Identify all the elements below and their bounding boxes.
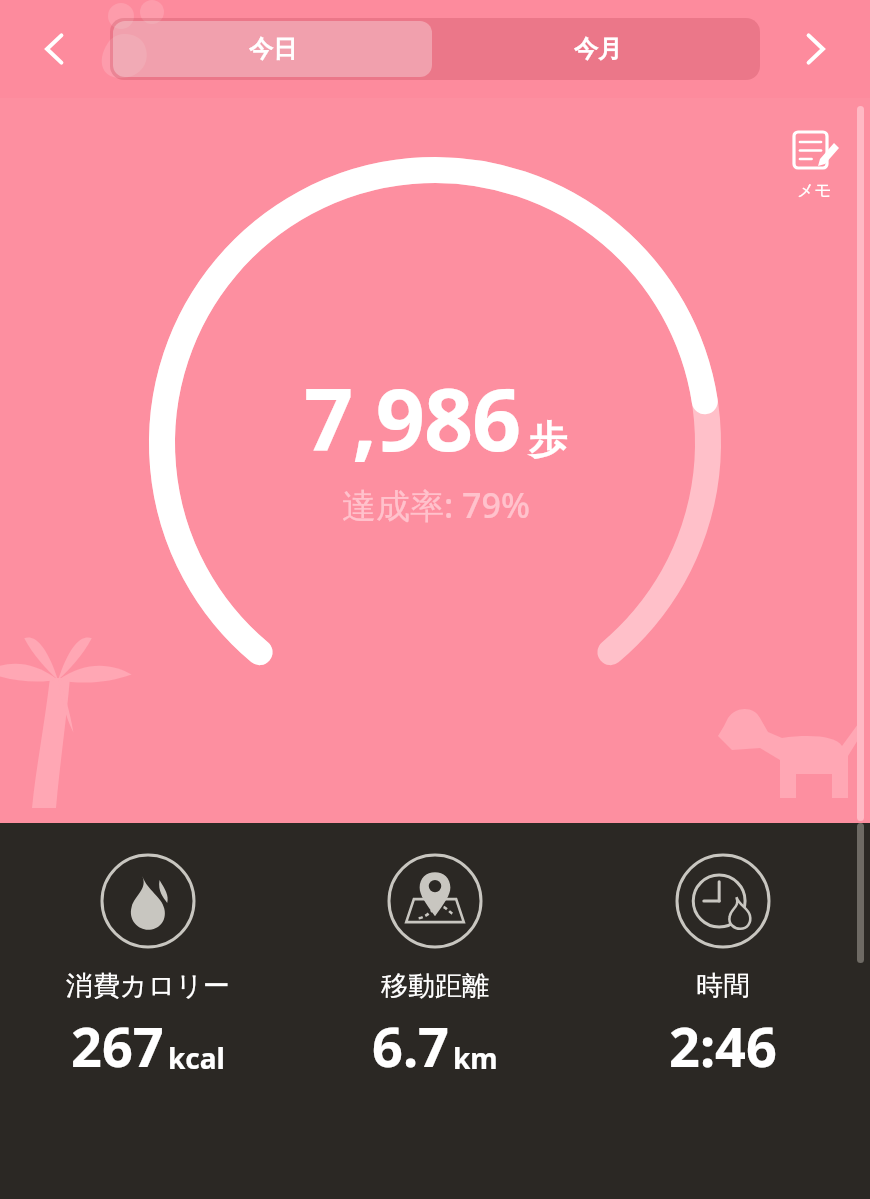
button[interactable]: 今日 bbox=[113, 21, 432, 77]
staticText: 2:46 bbox=[669, 1009, 777, 1083]
staticText: 7,986 bbox=[304, 359, 521, 476]
button[interactable]: メモ bbox=[782, 128, 846, 206]
staticText: 移動距離 bbox=[381, 969, 489, 1003]
button[interactable]: Previous bbox=[0, 0, 110, 98]
staticText: 今月 bbox=[574, 34, 622, 64]
staticText: 消費カロリー bbox=[66, 969, 230, 1003]
staticText: メモ bbox=[797, 180, 832, 201]
button[interactable]: 移動距離 bbox=[295, 853, 575, 1083]
staticText: 達成率: 79% bbox=[342, 482, 530, 528]
button[interactable]: 消費カロリー bbox=[8, 853, 288, 1083]
staticText: 267 bbox=[71, 1009, 164, 1083]
button[interactable]: Next bbox=[760, 0, 870, 98]
staticText: 今日 bbox=[249, 34, 297, 64]
button[interactable]: 今月 bbox=[435, 18, 760, 80]
staticText: 歩 bbox=[529, 416, 567, 464]
staticText: km bbox=[453, 1039, 498, 1077]
staticText: 6.7 bbox=[372, 1009, 449, 1083]
staticText: 時間 bbox=[696, 969, 750, 1003]
button[interactable]: 時間 bbox=[583, 853, 863, 1083]
staticText: kcal bbox=[168, 1039, 225, 1077]
